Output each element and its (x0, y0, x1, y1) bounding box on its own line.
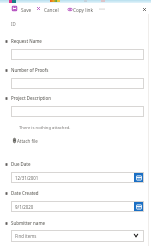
button[interactable]: 9/1/2020 (11, 201, 144, 212)
staticText: There is nothing attached. (19, 125, 71, 131)
button[interactable]: Pick due date (134, 172, 144, 183)
button[interactable]: 12/31/2001 (11, 172, 144, 183)
staticText: 12/31/2001 (15, 175, 39, 181)
staticText: Attach file (17, 138, 38, 144)
button[interactable]: Find items (11, 230, 144, 242)
staticText: Due Date (11, 161, 31, 167)
staticText: 9/1/2020 (15, 204, 34, 210)
staticText: Request Name (11, 38, 42, 44)
other: Show options (127, 231, 144, 242)
staticText: Project Description (11, 95, 51, 101)
button[interactable] (11, 106, 144, 117)
button[interactable]: Save (11, 4, 29, 14)
button[interactable] (11, 78, 144, 89)
staticText: Cancel (44, 7, 59, 13)
button[interactable]: Close (139, 4, 150, 14)
button[interactable] (11, 49, 144, 60)
button[interactable]: Pick created date (134, 201, 144, 212)
staticText: Save (21, 7, 32, 13)
button[interactable]: Attach file (12, 136, 38, 145)
staticText: Find items (15, 233, 37, 239)
staticText: Submitter name (11, 220, 46, 226)
staticText: Copy link (73, 7, 94, 13)
button[interactable]: Copy link (67, 4, 93, 14)
staticText: Number of Proofs (11, 67, 49, 73)
button[interactable]: Cancel (36, 4, 60, 14)
staticText: Date Created (11, 190, 39, 196)
staticText: ID (11, 21, 16, 27)
button[interactable]: More commands (96, 4, 107, 14)
